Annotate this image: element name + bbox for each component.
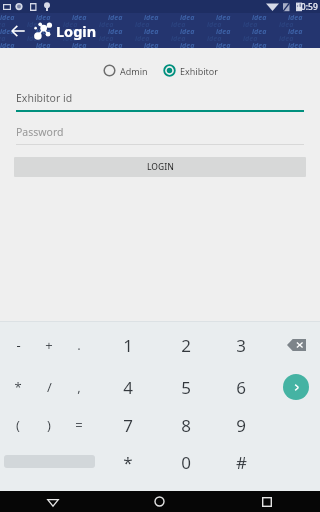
staticText: idea (63, 34, 99, 41)
staticText: idea (99, 34, 135, 41)
staticText: ( (16, 416, 20, 434)
staticText: 8 (181, 414, 191, 437)
staticText: - (16, 336, 21, 354)
staticText: 0 (181, 451, 191, 474)
staticText: idea (216, 41, 252, 48)
staticText: idea (144, 41, 180, 48)
staticText: idea (243, 34, 279, 41)
staticText: idea (72, 41, 108, 48)
button[interactable]: 5 (169, 374, 203, 400)
staticText: idea (27, 20, 63, 27)
button[interactable]: Recents (213, 491, 320, 512)
staticText: idea (0, 41, 36, 48)
staticText: Exhibitor id (16, 91, 73, 105)
staticText: idea (27, 34, 63, 41)
button[interactable]: / (32, 374, 66, 400)
staticText: idea (108, 13, 144, 20)
staticText: idea (252, 27, 288, 34)
staticText: idea (0, 34, 27, 41)
staticText: idea (144, 27, 180, 34)
staticText: / (47, 378, 52, 396)
button[interactable]: + (32, 332, 66, 358)
button[interactable]: 2 (169, 332, 203, 358)
staticText: idea (216, 13, 252, 20)
button[interactable]: Admin (101, 61, 150, 80)
button[interactable]: ) (32, 412, 66, 438)
staticText: idea (144, 13, 180, 20)
button[interactable]: 7 (111, 412, 145, 438)
staticText: = (75, 416, 83, 434)
button[interactable]: Exhibitor (161, 61, 220, 80)
staticText: idea (180, 13, 216, 20)
staticText: Login (56, 21, 97, 41)
staticText: idea (36, 27, 72, 34)
button[interactable]: 1 (111, 332, 145, 358)
staticText: idea (135, 34, 171, 41)
staticText: 10:59 (296, 1, 318, 13)
button[interactable]: Delete (280, 335, 312, 355)
staticText: Password (16, 125, 64, 139)
button[interactable]: ( (1, 412, 35, 438)
button[interactable]: # (224, 449, 258, 475)
button[interactable]: 0 (169, 449, 203, 475)
staticText: idea (279, 20, 311, 27)
staticText: 4 (123, 376, 133, 399)
staticText: + (45, 336, 53, 354)
button[interactable]: 3 (224, 332, 258, 358)
staticText: idea (0, 13, 36, 20)
staticText: idea (108, 41, 144, 48)
button[interactable]: 4 (111, 374, 145, 400)
staticText: idea (288, 27, 320, 34)
staticText: idea (216, 27, 252, 34)
staticText: idea (243, 20, 279, 27)
staticText: idea (279, 34, 311, 41)
staticText: idea (63, 20, 99, 27)
button[interactable]: Home (106, 491, 213, 512)
staticText: idea (0, 20, 27, 27)
staticText: idea (288, 41, 320, 48)
staticText: * (14, 378, 22, 396)
button[interactable]: Back (5, 18, 31, 44)
staticText: idea (36, 41, 72, 48)
button[interactable]: - (1, 332, 35, 358)
staticText: Exhibitor (180, 65, 218, 77)
staticText: * (123, 451, 133, 474)
staticText: idea (135, 20, 171, 27)
button[interactable]: * (1, 374, 35, 400)
staticText: idea (99, 20, 135, 27)
button[interactable]: Password (16, 125, 304, 145)
staticText: idea (207, 34, 243, 41)
button[interactable]: 6 (224, 374, 258, 400)
button[interactable]: Exhibitor id (16, 91, 304, 112)
staticText: idea (252, 13, 288, 20)
staticText: 1 (123, 334, 133, 357)
staticText: ) (47, 416, 51, 434)
staticText: idea (171, 34, 207, 41)
staticText: # (236, 451, 247, 474)
staticText: Admin (120, 65, 148, 77)
button[interactable]: 9 (224, 412, 258, 438)
staticText: idea (36, 13, 72, 20)
staticText: 3 (236, 334, 246, 357)
staticText: LOGIN (147, 161, 174, 173)
button[interactable]: 8 (169, 412, 203, 438)
staticText: idea (0, 27, 36, 34)
button[interactable]: . (62, 332, 96, 358)
staticText: 5 (181, 376, 191, 399)
staticText: idea (180, 41, 216, 48)
button[interactable]: , (62, 374, 96, 400)
staticText: , (77, 378, 81, 396)
button[interactable]: * (111, 449, 145, 475)
staticText: idea (207, 20, 243, 27)
staticText: idea (288, 13, 320, 20)
button[interactable]: LOGIN (14, 157, 306, 177)
staticText: idea (180, 27, 216, 34)
button[interactable]: = (62, 412, 96, 438)
staticText: idea (252, 41, 288, 48)
button[interactable]: Back (0, 491, 106, 512)
staticText: 2 (181, 334, 191, 357)
staticText: . (77, 336, 81, 354)
button[interactable]: Enter (283, 374, 309, 400)
staticText: idea (108, 27, 144, 34)
